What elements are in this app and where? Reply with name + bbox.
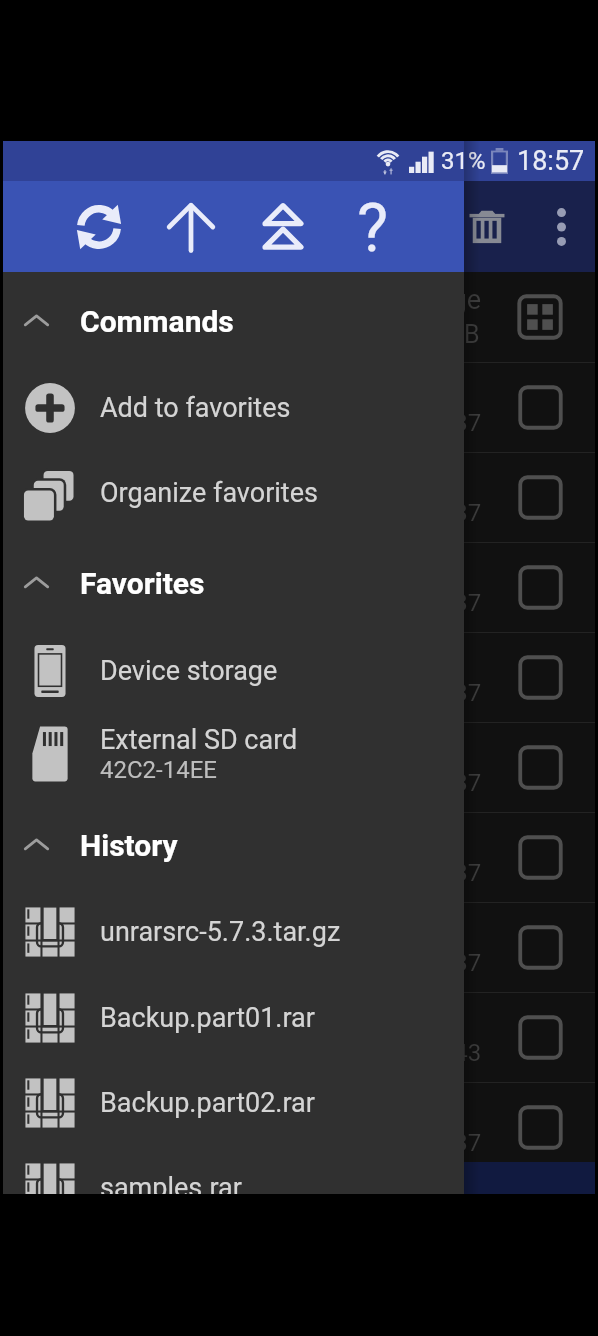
staticText: ? <box>357 190 389 267</box>
button[interactable]: Favorites <box>3 541 464 625</box>
other: Grid view <box>517 294 563 340</box>
staticText: Internal storage <box>293 284 482 316</box>
staticText: Add to favorites <box>100 392 291 424</box>
staticText: 2019-06-37 <box>360 409 482 437</box>
button[interactable]: 2019-06-37 <box>3 453 595 542</box>
staticText: 2018-11-37 <box>360 589 482 617</box>
staticText: unrarsrc-5.7.3.tar.gz <box>100 916 341 948</box>
button[interactable]: History <box>3 803 464 887</box>
staticText: Backup.part01.rar <box>100 1002 315 1034</box>
button[interactable]: 2019-03-37 <box>3 813 595 902</box>
button[interactable]: Up <box>157 181 225 272</box>
button[interactable]: Add to favorites <box>3 365 464 451</box>
staticText: Commands <box>80 304 234 339</box>
staticText: 31% <box>441 147 486 175</box>
button[interactable]: 2019-02-37 <box>3 1083 595 1172</box>
button[interactable]: Refresh <box>65 181 133 272</box>
staticText: 2018-07-37 <box>360 769 482 797</box>
staticText: Device storage <box>100 655 278 687</box>
staticText: 42C2-14EE <box>100 756 217 784</box>
button[interactable]: 2019-01-37 <box>3 633 595 722</box>
button[interactable]: 2018-07-37 <box>3 723 595 812</box>
button[interactable]: 2017-05-43 <box>3 993 595 1082</box>
button[interactable]: Backup.part01.rar <box>3 975 464 1061</box>
button[interactable]: Commands <box>3 279 464 363</box>
button[interactable]: Grid view <box>3 272 595 362</box>
staticText: 18:57 <box>517 145 585 177</box>
button[interactable]: Organize favorites <box>3 450 464 536</box>
button[interactable]: unrarsrc-5.7.3.tar.gz <box>3 889 464 975</box>
button[interactable]: Device storage <box>3 628 464 714</box>
button[interactable]: More options <box>531 181 591 272</box>
staticText: 2019-01-37 <box>360 679 482 707</box>
staticText: 2019-02-37 <box>360 1129 482 1157</box>
staticText: 10.35 GB <box>378 320 480 349</box>
button[interactable]: External SD card <box>3 711 464 797</box>
button[interactable]: 2019-06-37 <box>3 363 595 452</box>
button[interactable]: 2018-11-37 <box>3 543 595 632</box>
staticText: Backup.part02.rar <box>100 1087 315 1119</box>
button[interactable]: 2018-12-37 <box>3 903 595 992</box>
staticText: 2019-03-37 <box>360 859 482 887</box>
button[interactable]: Backup.part02.rar <box>3 1060 464 1146</box>
staticText: 2017-05-43 <box>360 1039 482 1067</box>
staticText: Favorites <box>80 566 205 601</box>
staticText: Organize favorites <box>100 477 318 509</box>
staticText: 2019-06-37 <box>360 499 482 527</box>
staticText: External SD card <box>100 724 298 756</box>
staticText: 2018-12-37 <box>360 949 482 977</box>
button[interactable]: samples.rar <box>3 1145 464 1194</box>
button[interactable]: Help <box>339 183 407 274</box>
staticText: samples.rar <box>100 1172 242 1194</box>
staticText: History <box>80 828 178 863</box>
button[interactable]: Extract <box>249 181 317 272</box>
button[interactable]: Delete <box>455 181 519 272</box>
